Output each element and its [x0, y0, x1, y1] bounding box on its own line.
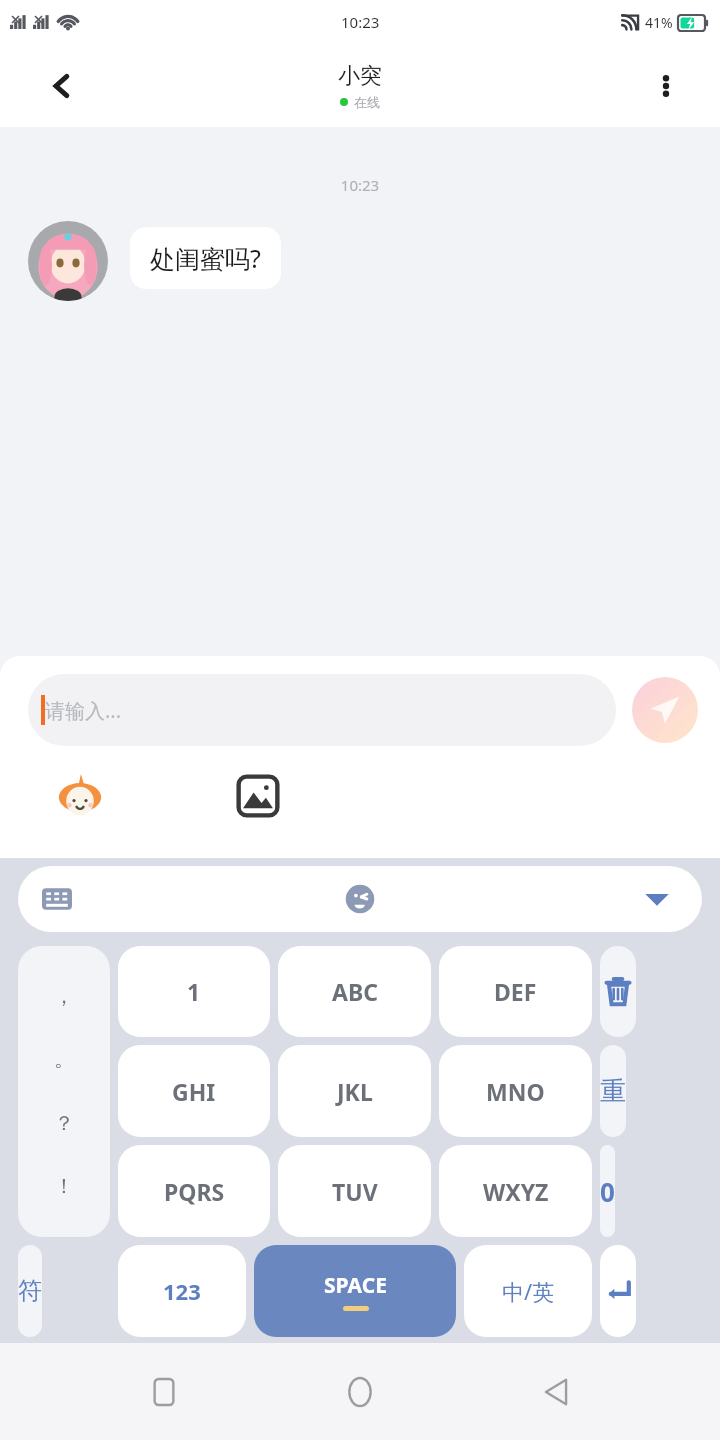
staticText: 处闺蜜吗?: [150, 241, 261, 275]
button[interactable]: DEF: [439, 946, 592, 1037]
button[interactable]: WXYZ: [439, 1145, 592, 1237]
button[interactable]: TUV: [278, 1145, 431, 1237]
button[interactable]: More options: [640, 60, 692, 112]
button[interactable]: Send: [632, 677, 698, 743]
button[interactable]: GHI: [118, 1045, 270, 1137]
button[interactable]: ，: [18, 946, 110, 1237]
staticText: 重: [600, 1075, 626, 1108]
button[interactable]: 请输入...: [28, 674, 616, 746]
button[interactable]: Enter: [600, 1245, 636, 1337]
staticText: 10:23: [0, 175, 720, 195]
button[interactable]: 处闺蜜吗?: [130, 227, 281, 289]
button[interactable]: 中/英: [464, 1245, 592, 1337]
button[interactable]: Image: [230, 768, 286, 824]
button[interactable]: MNO: [439, 1045, 592, 1137]
staticText: 小突: [338, 62, 382, 90]
staticText: ，: [54, 984, 74, 1009]
button[interactable]: Back: [34, 58, 90, 114]
button[interactable]: Keyboard layout: [30, 872, 84, 926]
button[interactable]: Back: [524, 1360, 588, 1424]
button[interactable]: Avatar: [28, 221, 108, 301]
staticText: 符: [18, 1276, 42, 1306]
button[interactable]: 123: [118, 1245, 246, 1337]
staticText: 1: [187, 976, 201, 1007]
staticText: WXYZ: [483, 1176, 549, 1207]
button[interactable]: Sticker: [52, 768, 108, 824]
button[interactable]: 重: [600, 1045, 626, 1137]
button[interactable]: 1: [118, 946, 270, 1037]
button[interactable]: Emoji: [333, 872, 387, 926]
button[interactable]: Home: [328, 1360, 392, 1424]
staticText: 在线: [354, 94, 380, 110]
button[interactable]: Delete: [600, 946, 636, 1037]
staticText: ABC: [332, 976, 378, 1007]
button[interactable]: Recents: [132, 1360, 196, 1424]
staticText: 中/英: [502, 1276, 555, 1306]
staticText: 123: [163, 1276, 201, 1306]
button[interactable]: JKL: [278, 1045, 431, 1137]
staticText: ！: [54, 1174, 74, 1199]
button[interactable]: PQRS: [118, 1145, 270, 1237]
button[interactable]: ABC: [278, 946, 431, 1037]
button[interactable]: Hide keyboard: [630, 872, 684, 926]
staticText: TUV: [332, 1176, 378, 1207]
staticText: JKL: [337, 1076, 373, 1107]
staticText: 0: [600, 1174, 615, 1209]
staticText: 41%: [645, 13, 673, 32]
staticText: GHI: [172, 1076, 216, 1107]
staticText: ？: [54, 1111, 74, 1136]
button[interactable]: SPACE: [254, 1245, 456, 1337]
staticText: 请输入...: [45, 697, 122, 724]
staticText: SPACE: [324, 1271, 387, 1300]
staticText: 。: [54, 1047, 74, 1072]
button[interactable]: 符: [18, 1245, 42, 1337]
staticText: DEF: [494, 976, 537, 1007]
staticText: 10:23: [341, 12, 380, 32]
staticText: PQRS: [164, 1176, 225, 1207]
staticText: MNO: [486, 1076, 545, 1107]
button[interactable]: 0: [600, 1145, 615, 1237]
